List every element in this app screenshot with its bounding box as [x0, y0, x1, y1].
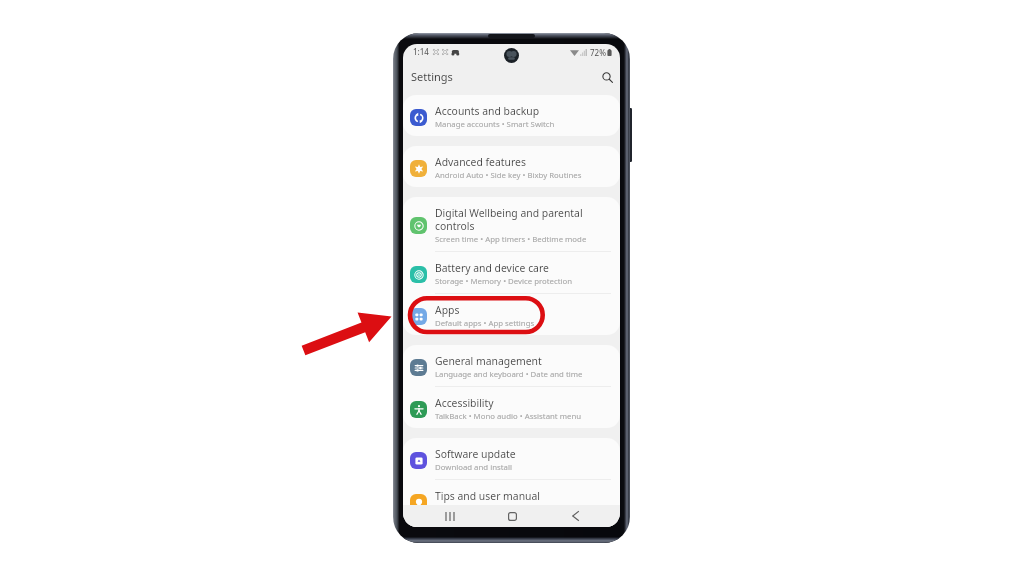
button[interactable]: Digital Wellbeing and parental controls	[403, 197, 620, 251]
button[interactable]: Advanced features	[403, 146, 620, 187]
button[interactable]: Tips and user manual	[403, 480, 620, 521]
staticText: Battery and device care	[435, 261, 549, 275]
button[interactable]: Apps	[403, 294, 620, 335]
staticText: Tips and user manual	[435, 489, 541, 503]
staticText: Default apps • App settings	[435, 318, 535, 329]
button[interactable]: Accessibility	[403, 387, 620, 428]
button[interactable]: General management	[403, 345, 620, 386]
staticText: Storage • Memory • Device protection	[435, 276, 573, 287]
button[interactable]: Home	[502, 506, 522, 526]
staticText: Accessibility	[435, 396, 494, 410]
staticText: Language and keyboard • Date and time	[435, 369, 583, 380]
staticText: Advanced features	[435, 155, 526, 169]
button[interactable]: Search	[597, 67, 617, 87]
staticText: 72%	[590, 47, 606, 58]
staticText: TalkBack • Mono audio • Assistant menu	[435, 411, 582, 422]
staticText: Manage accounts • Smart Switch	[435, 119, 555, 130]
staticText: Software update	[435, 447, 516, 461]
staticText: Useful tips • New features	[435, 504, 530, 515]
button[interactable]: Back	[565, 506, 585, 526]
staticText: 1:14	[413, 46, 429, 57]
staticText: General management	[435, 354, 542, 368]
staticText: Settings	[411, 69, 453, 84]
staticText: Android Auto • Side key • Bixby Routines	[435, 170, 582, 181]
staticText: Screen time • App timers • Bedtime mode	[435, 234, 587, 245]
staticText: Accounts and backup	[435, 104, 540, 118]
button[interactable]: Battery and device care	[403, 252, 620, 293]
staticText: Apps	[435, 303, 460, 317]
staticText: Download and install	[435, 462, 512, 473]
staticText: Digital Wellbeing and parental controls	[435, 206, 583, 233]
button[interactable]: Accounts and backup	[403, 95, 620, 136]
button[interactable]: Recent apps	[440, 506, 460, 526]
button[interactable]: Software update	[403, 438, 620, 479]
